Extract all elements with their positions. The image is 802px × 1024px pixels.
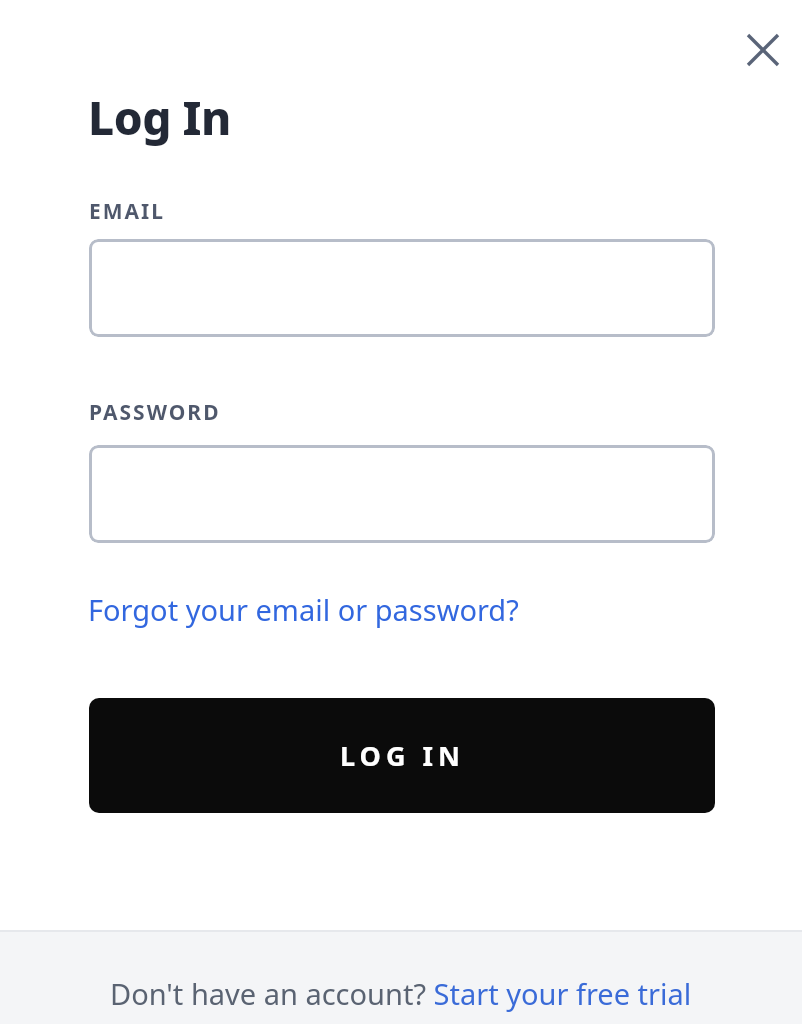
staticText: LOG IN — [340, 737, 465, 774]
staticText: PASSWORD — [89, 398, 221, 427]
button[interactable] — [733, 20, 793, 80]
button[interactable] — [89, 445, 715, 543]
staticText: Forgot your email or password? — [88, 590, 519, 629]
button[interactable]: Don't have an account? Start your free t… — [110, 974, 692, 1013]
staticText: Log In — [88, 86, 231, 149]
staticText: Don't have an account? Start your free t… — [110, 974, 692, 1013]
button[interactable]: LOG IN — [89, 698, 715, 813]
button[interactable] — [89, 239, 715, 337]
staticText: EMAIL — [89, 197, 166, 226]
button[interactable]: Forgot your email or password? — [88, 590, 519, 629]
